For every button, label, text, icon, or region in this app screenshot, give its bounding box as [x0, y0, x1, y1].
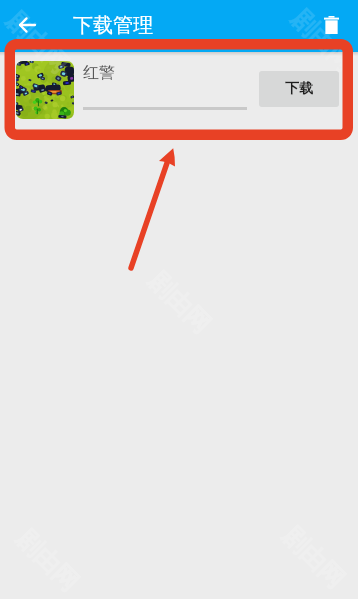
- staticText: 下载管理: [73, 13, 153, 38]
- button[interactable]: 下载: [259, 71, 339, 107]
- staticText: 剧由网: [0, 5, 75, 80]
- staticText: 剧由网: [285, 3, 358, 78]
- staticText: 红警: [83, 63, 115, 83]
- button[interactable]: Delete all: [311, 6, 351, 46]
- staticText: 下载: [285, 80, 313, 98]
- button[interactable]: 红警: [0, 52, 358, 129]
- button[interactable]: Back: [7, 6, 47, 46]
